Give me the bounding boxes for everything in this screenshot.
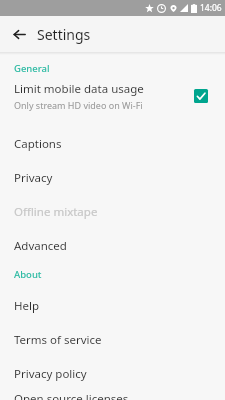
staticText: Advanced [14,238,67,254]
staticText: Open source licenses [14,391,129,400]
staticText: 14:06 [200,2,222,14]
staticText: Terms of service [14,332,102,348]
staticText: General [14,62,50,75]
staticText: About [14,268,42,281]
button[interactable]: Advanced [0,229,225,263]
button[interactable]: Help [0,289,225,323]
staticText: Privacy [14,170,53,186]
button[interactable]: Privacy policy [0,357,225,391]
button[interactable]: Back [6,21,32,47]
staticText: Captions [14,136,62,152]
staticText: Help [14,298,40,314]
button: Offline mixtape [0,195,225,229]
staticText: Settings [37,25,91,44]
button[interactable]: Captions [0,127,225,161]
staticText: Privacy policy [14,366,87,382]
button[interactable]: Open source licenses [0,391,225,400]
staticText: Only stream HD video on Wi-Fi [14,99,143,111]
button[interactable]: Limit mobile data usage [0,81,225,111]
button[interactable]: Limit mobile data usage checkbox [191,86,211,106]
button[interactable]: Privacy [0,161,225,195]
staticText: Offline mixtape [14,204,98,220]
button[interactable]: Terms of service [0,323,225,357]
staticText: Limit mobile data usage [14,81,144,97]
